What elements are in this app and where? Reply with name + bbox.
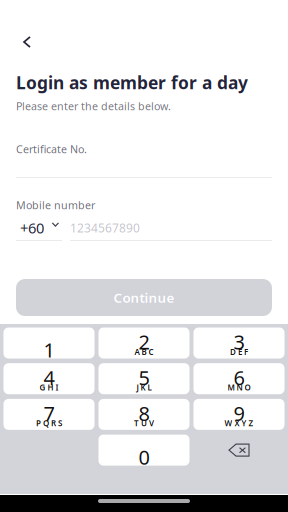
- button[interactable]: 3: [193, 327, 284, 358]
- staticText: +60: [20, 218, 44, 237]
- staticText: 3: [233, 328, 244, 355]
- staticText: Continue: [113, 289, 174, 306]
- button[interactable]: 2: [98, 327, 189, 358]
- staticText: 7: [43, 400, 54, 426]
- staticText: 6: [233, 364, 244, 391]
- staticText: 5: [138, 364, 149, 391]
- button[interactable]: +60: [17, 213, 63, 234]
- button[interactable]: 8: [98, 399, 189, 430]
- staticText: Mobile number: [16, 198, 95, 212]
- staticText: 0: [138, 444, 149, 470]
- staticText: Please enter the details below.: [16, 99, 171, 113]
- button[interactable]: 4: [3, 363, 94, 394]
- button[interactable]: Delete: [193, 435, 284, 466]
- staticText: G H I: [39, 382, 58, 393]
- staticText: 8: [138, 400, 149, 426]
- button[interactable]: 0: [98, 435, 189, 466]
- staticText: 1: [43, 336, 54, 363]
- button[interactable]: Back: [10, 25, 44, 59]
- button[interactable]: 5: [98, 363, 189, 394]
- staticText: J K L: [136, 382, 151, 393]
- staticText: 4: [43, 364, 54, 391]
- staticText: T U V: [134, 418, 154, 428]
- staticText: 2: [138, 328, 149, 355]
- staticText: A B C: [134, 346, 153, 357]
- staticText: P Q R S: [36, 418, 62, 428]
- staticText: W X Y Z: [224, 418, 253, 428]
- staticText: 1234567890: [70, 220, 140, 236]
- button[interactable]: 6: [193, 363, 284, 394]
- staticText: 9: [233, 400, 244, 426]
- button[interactable]: 9: [193, 399, 284, 430]
- button[interactable]: Continue: [16, 279, 272, 316]
- staticText: Certificate No.: [16, 142, 87, 156]
- staticText: Login as member for a day: [16, 71, 248, 94]
- button[interactable]: 1: [3, 327, 94, 358]
- button[interactable]: 7: [3, 399, 94, 430]
- staticText: M N O: [227, 382, 250, 393]
- staticText: D E F: [230, 346, 248, 357]
